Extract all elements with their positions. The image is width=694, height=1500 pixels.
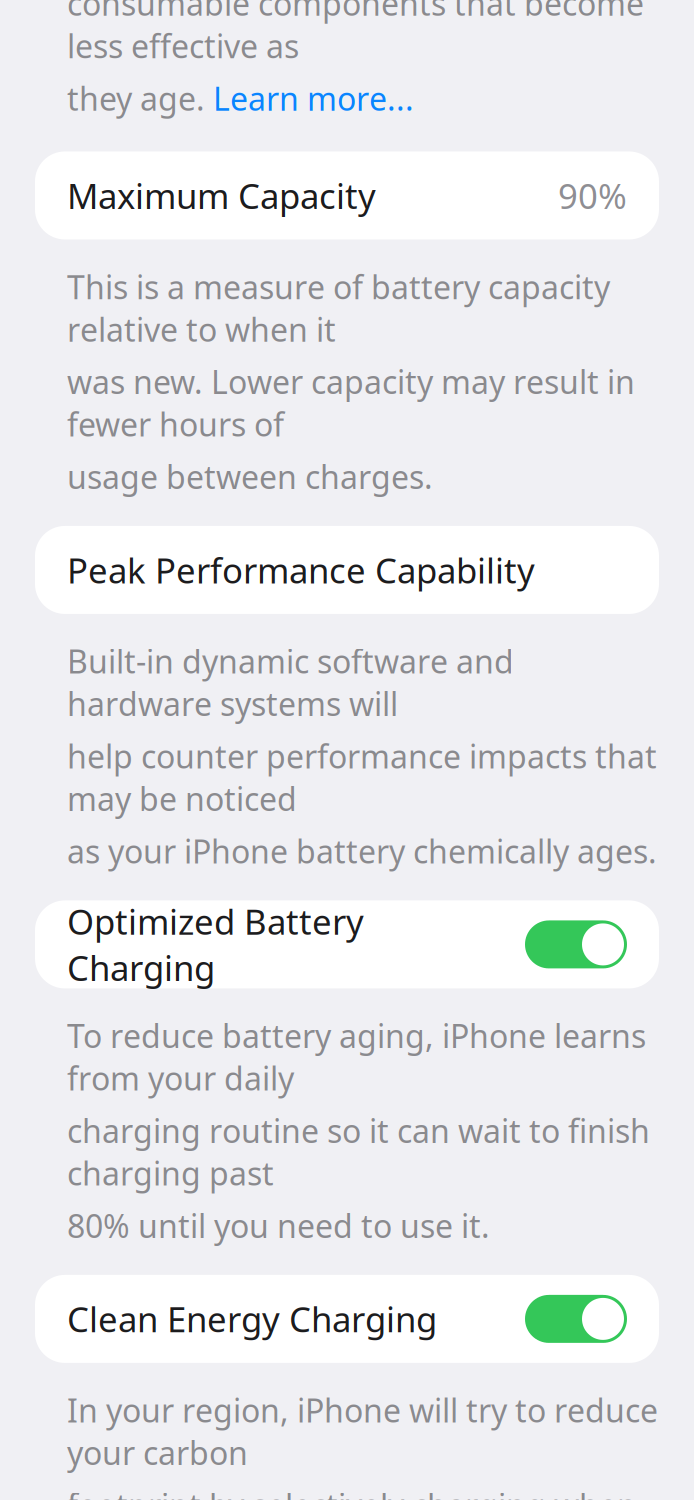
- staticText: as your iPhone battery chemically ages.: [67, 830, 657, 872]
- staticText: Peak Performance Capability: [67, 547, 535, 593]
- button[interactable]: Maximum Capacity: [35, 151, 659, 239]
- staticText: help counter performance impacts that ma…: [67, 735, 657, 820]
- staticText: Optimized Battery Charging: [67, 898, 364, 990]
- staticText: they age.: [67, 77, 213, 119]
- button[interactable]: Optimized Battery Charging: [35, 900, 659, 988]
- staticText: Learn more...: [213, 77, 414, 119]
- staticText: Maximum Capacity: [67, 172, 376, 218]
- staticText: usage between charges.: [67, 455, 433, 498]
- staticText: In your region, iPhone will try to reduc…: [67, 1389, 658, 1474]
- button[interactable]: Peak Performance Capability: [35, 526, 659, 614]
- staticText: This is a measure of battery capacity re…: [67, 265, 610, 350]
- button[interactable]: Clean Energy Charging: [35, 1275, 659, 1363]
- staticText: Clean Energy Charging: [67, 1296, 437, 1342]
- staticText: To reduce battery aging, iPhone learns f…: [67, 1014, 646, 1099]
- staticText: consumable components that become less e…: [67, 0, 644, 67]
- staticText: 80% until you need to use it.: [67, 1204, 490, 1247]
- staticText: charging routine so it can wait to finis…: [67, 1109, 650, 1194]
- staticText: footprint by selectively charging when l…: [67, 1484, 637, 1500]
- staticText: was new. Lower capacity may result in fe…: [67, 360, 635, 445]
- staticText: Built-in dynamic software and hardware s…: [67, 640, 514, 725]
- staticText: 90%: [558, 172, 627, 218]
